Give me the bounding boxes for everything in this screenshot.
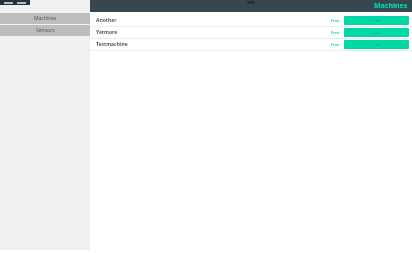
staticText: Testmachine [96, 41, 331, 48]
button[interactable]: Reserve Yetmore [344, 28, 409, 37]
button[interactable]: Testmachine [90, 39, 412, 50]
button[interactable]: Machines [0, 13, 90, 24]
button[interactable]: Yetmore [90, 27, 412, 38]
staticText: use [373, 30, 380, 35]
staticText: use [373, 18, 380, 23]
staticText: Yetmore [96, 29, 331, 36]
staticText: Machines [374, 1, 408, 11]
staticText: Free [331, 18, 340, 23]
staticText: Free [331, 30, 340, 35]
button[interactable]: Another [90, 15, 412, 26]
button[interactable]: Reserve Another [344, 16, 409, 25]
staticText: Free [331, 42, 340, 47]
staticText: use [373, 42, 380, 47]
button[interactable]: Sensors [0, 25, 90, 36]
staticText: Another [96, 17, 331, 24]
staticText: Machines [34, 15, 57, 22]
button[interactable]: Reserve Testmachine [344, 40, 409, 49]
staticText: Sensors [36, 27, 55, 34]
